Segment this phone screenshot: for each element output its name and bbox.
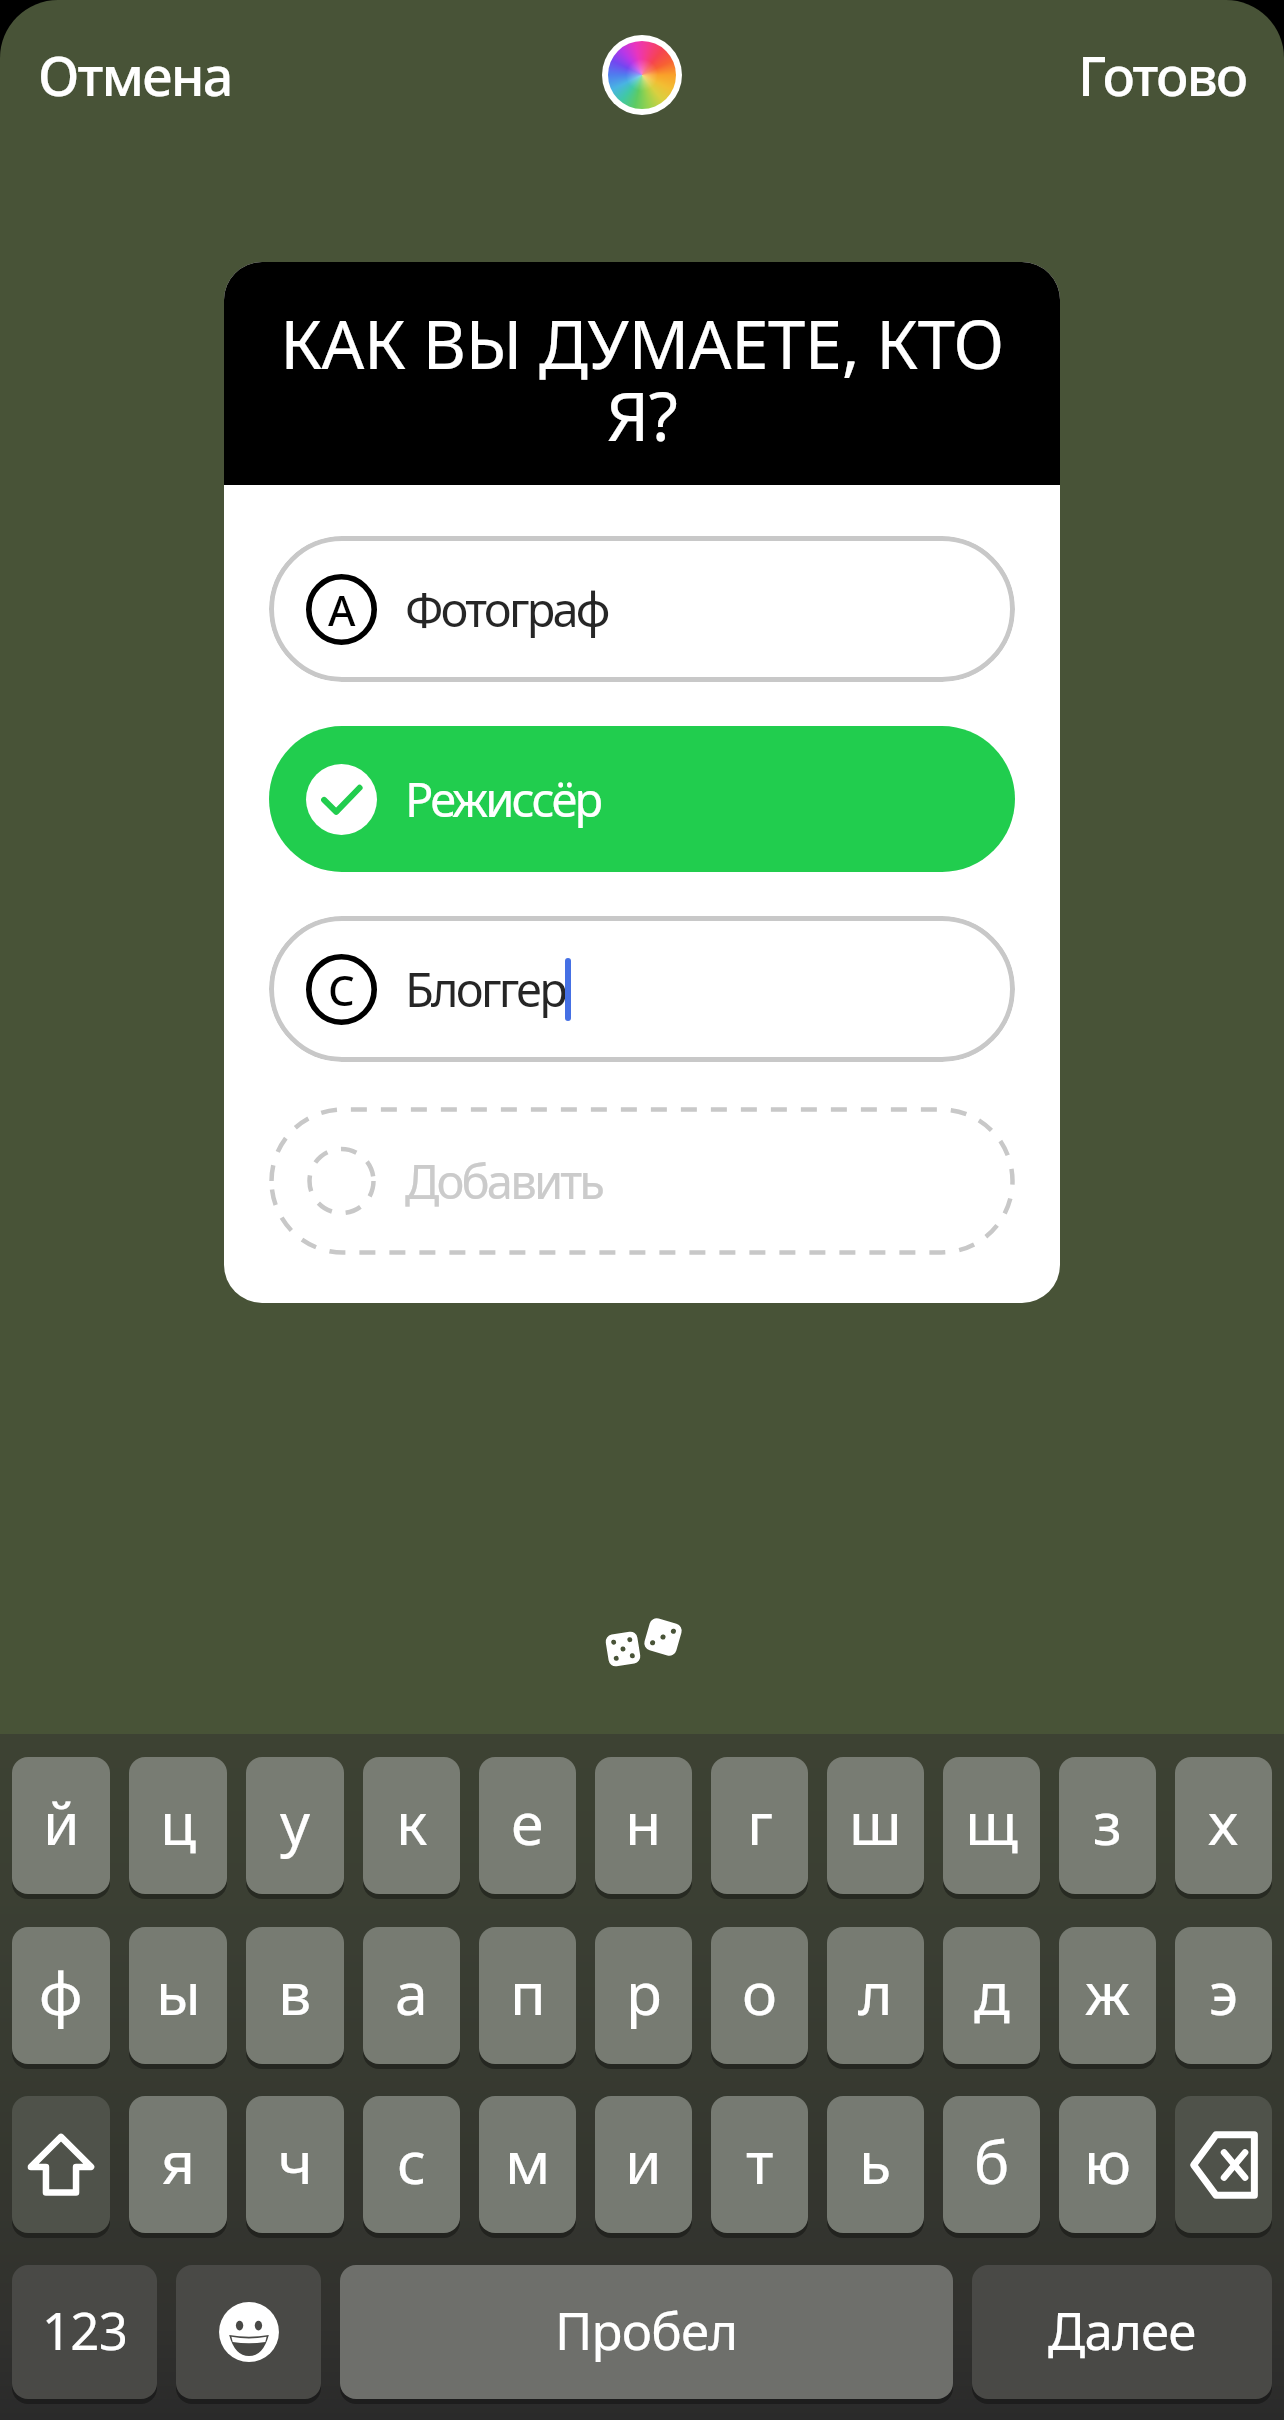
button[interactable]: Emoji <box>176 2265 321 2399</box>
staticText: Далее <box>1048 2295 1196 2364</box>
staticText: й <box>43 1782 80 1862</box>
staticText: л <box>858 1952 893 2032</box>
staticText: о <box>742 1952 778 2032</box>
staticText: я <box>161 2121 196 2201</box>
staticText: Блоггер <box>405 957 565 1021</box>
button[interactable]: х <box>1175 1757 1272 1894</box>
button[interactable]: б <box>943 2096 1040 2233</box>
button[interactable]: ь <box>827 2096 924 2233</box>
button[interactable]: Готово <box>1060 24 1265 126</box>
staticText: Отмена <box>38 38 232 112</box>
staticText: е <box>511 1782 544 1862</box>
button[interactable]: щ <box>943 1757 1040 1894</box>
staticText: ф <box>39 1952 83 2032</box>
button[interactable]: ж <box>1059 1927 1156 2064</box>
button[interactable]: э <box>1175 1927 1272 2064</box>
button[interactable]: р <box>595 1927 692 2064</box>
staticText: ю <box>1084 2121 1132 2201</box>
staticText: ч <box>278 2121 313 2201</box>
button[interactable]: с <box>363 2096 460 2233</box>
staticText: A <box>328 581 356 638</box>
staticText: 123 <box>42 2295 128 2364</box>
staticText: к <box>396 1782 428 1862</box>
button[interactable]: й <box>12 1757 110 1894</box>
button[interactable]: а <box>363 1927 460 2064</box>
button[interactable]: и <box>595 2096 692 2233</box>
staticText: в <box>278 1952 312 2032</box>
staticText: х <box>1208 1782 1239 1862</box>
button[interactable]: ы <box>129 1927 227 2064</box>
button[interactable]: ч <box>246 2096 344 2233</box>
staticText: т <box>746 2121 774 2201</box>
staticText: Фотограф <box>405 577 608 641</box>
button[interactable]: е <box>479 1757 576 1894</box>
button[interactable]: Пробел <box>340 2265 953 2399</box>
button[interactable]: Shuffle <box>593 1593 693 1693</box>
button[interactable]: ю <box>1059 2096 1156 2233</box>
button[interactable]: C <box>269 916 1015 1062</box>
button[interactable]: к <box>363 1757 460 1894</box>
staticText: КАК ВЫ ДУМАЕТЕ, КТО Я? <box>248 297 1036 460</box>
button[interactable]: Отмена <box>20 24 250 126</box>
staticText: п <box>510 1952 546 2032</box>
button[interactable]: Режиссёр <box>269 726 1015 872</box>
button[interactable]: ш <box>827 1757 924 1894</box>
staticText: Режиссёр <box>405 767 601 831</box>
button[interactable]: Добавить <box>269 1107 1015 1255</box>
button[interactable]: в <box>246 1927 344 2064</box>
staticText: р <box>626 1952 662 2032</box>
staticText: а <box>395 1952 428 2032</box>
button[interactable]: л <box>827 1927 924 2064</box>
button[interactable]: н <box>595 1757 692 1894</box>
staticText: ж <box>1085 1952 1130 2032</box>
button[interactable]: ц <box>129 1757 227 1894</box>
staticText: д <box>974 1952 1010 2032</box>
button[interactable]: ф <box>12 1927 110 2064</box>
button[interactable]: з <box>1059 1757 1156 1894</box>
button[interactable]: г <box>711 1757 808 1894</box>
button[interactable]: м <box>479 2096 576 2233</box>
staticText: с <box>397 2121 427 2201</box>
button[interactable]: у <box>246 1757 344 1894</box>
staticText: ш <box>849 1782 902 1862</box>
staticText: з <box>1093 1782 1122 1862</box>
staticText: щ <box>965 1782 1018 1862</box>
staticText: м <box>505 2121 551 2201</box>
button[interactable]: Shift <box>12 2096 110 2233</box>
button[interactable]: 123 <box>12 2265 157 2399</box>
button[interactable]: п <box>479 1927 576 2064</box>
button[interactable]: Backspace <box>1175 2096 1272 2233</box>
staticText: Добавить <box>405 1149 603 1213</box>
staticText: г <box>747 1782 773 1862</box>
staticText: б <box>974 2121 1010 2201</box>
staticText: э <box>1209 1952 1239 2032</box>
button[interactable]: т <box>711 2096 808 2233</box>
staticText: ь <box>859 2121 892 2201</box>
button[interactable]: Colour picker <box>587 20 697 130</box>
staticText: ц <box>160 1782 197 1862</box>
staticText: и <box>625 2121 662 2201</box>
staticText: ы <box>156 1952 201 2032</box>
button[interactable]: д <box>943 1927 1040 2064</box>
staticText: Готово <box>1078 38 1247 112</box>
staticText: у <box>280 1782 311 1862</box>
staticText: C <box>328 961 355 1018</box>
button[interactable]: A <box>269 536 1015 682</box>
staticText: н <box>625 1782 662 1862</box>
staticText: Пробел <box>555 2295 738 2364</box>
button[interactable]: я <box>129 2096 227 2233</box>
button[interactable]: Далее <box>972 2265 1272 2399</box>
button[interactable]: о <box>711 1927 808 2064</box>
